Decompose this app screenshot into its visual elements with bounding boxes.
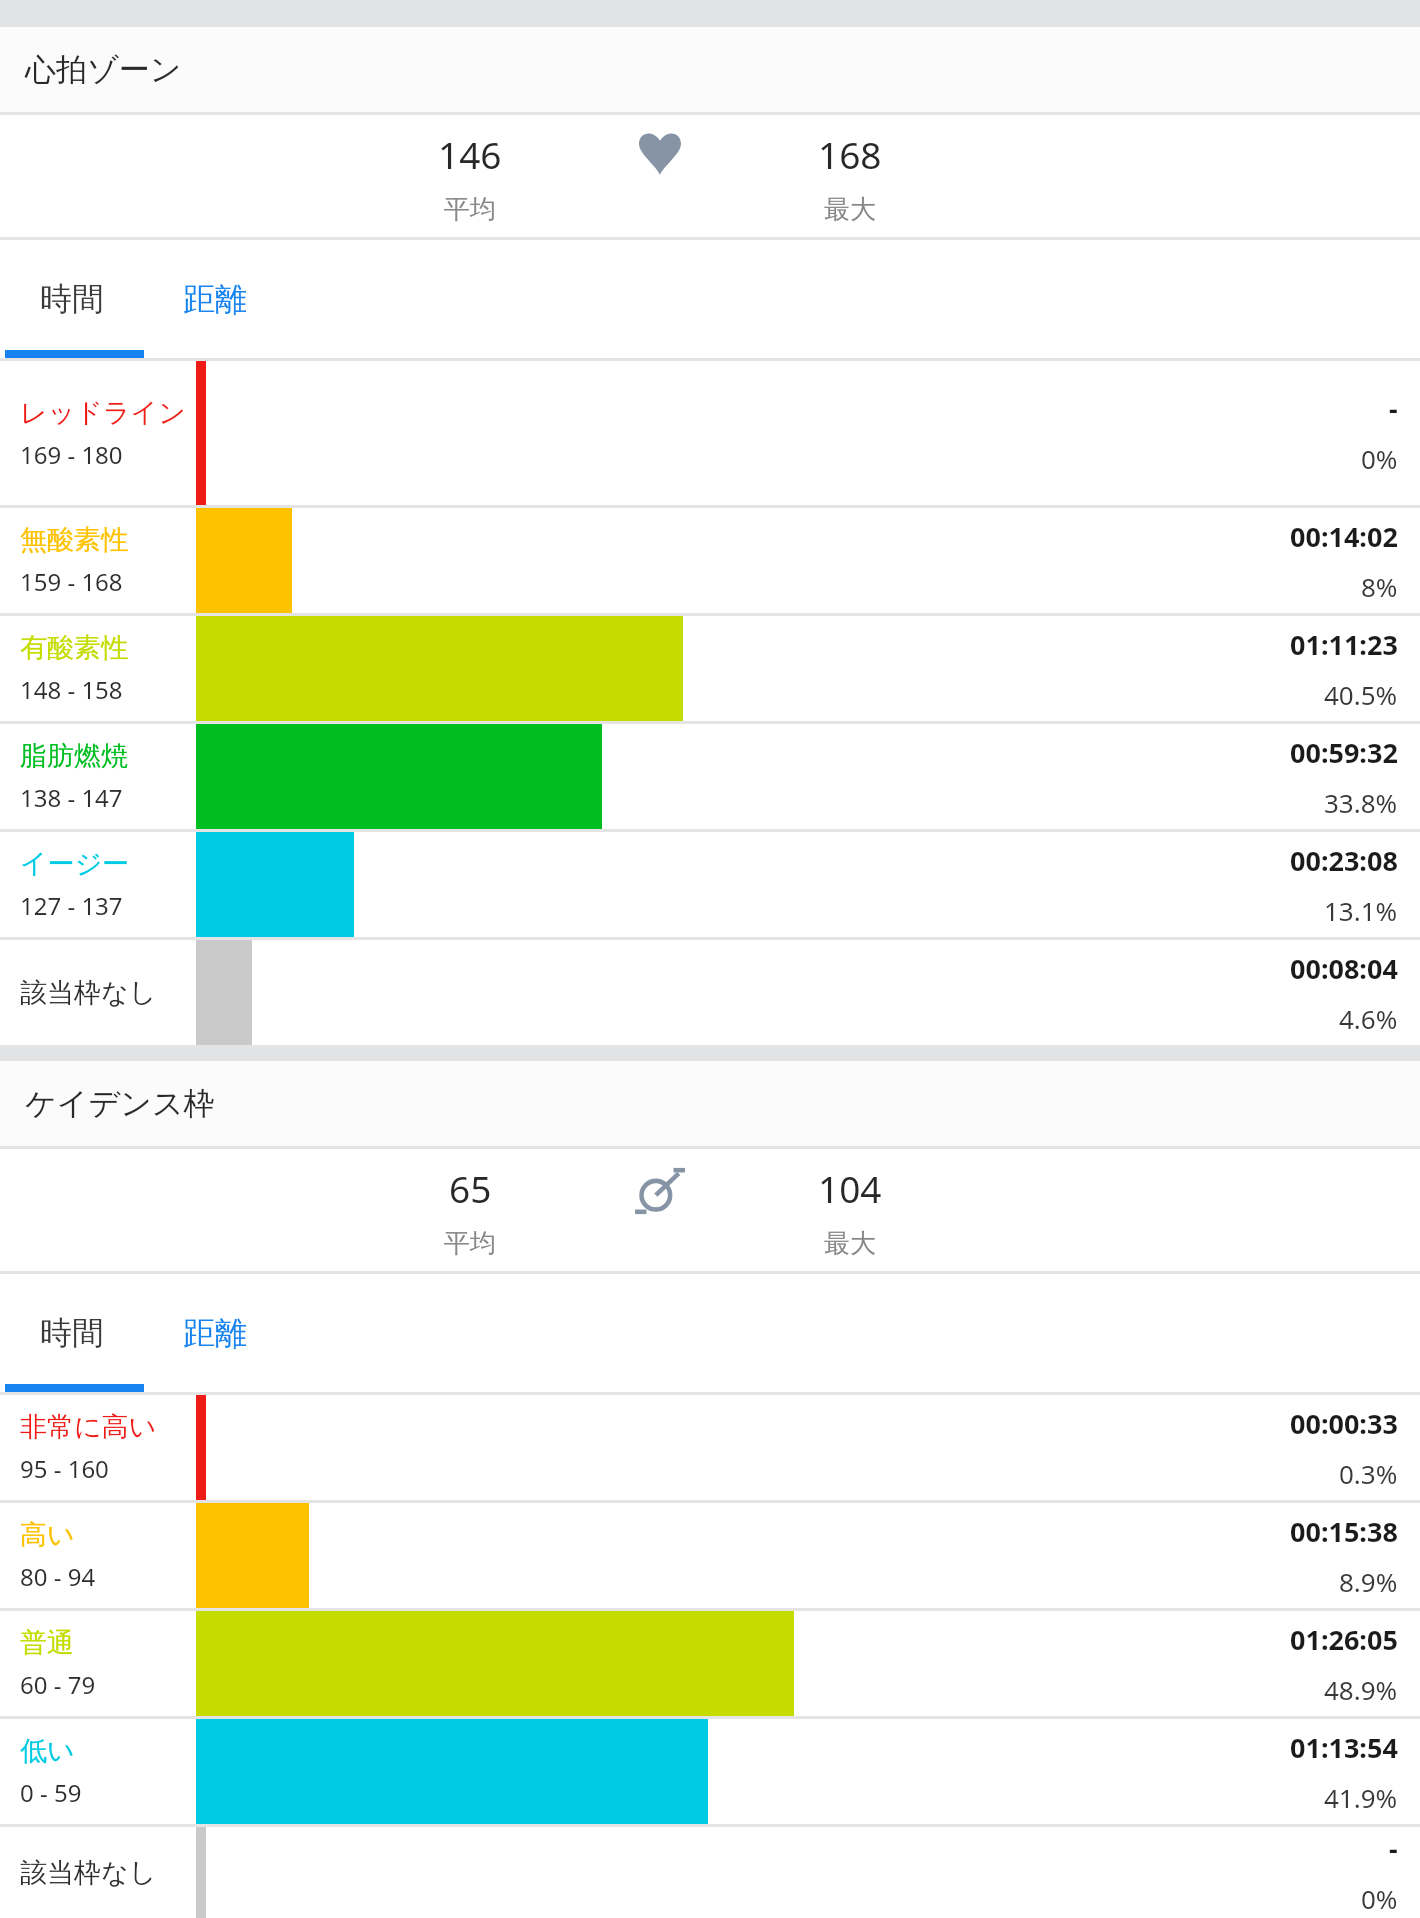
staticText: 01:13:54	[1290, 1729, 1398, 1766]
staticText: 最大	[824, 193, 876, 226]
staticText: 00:00:33	[1290, 1405, 1398, 1442]
staticText: 104	[818, 1163, 882, 1213]
staticText: 169 - 180	[20, 438, 123, 471]
staticText: -	[1389, 390, 1398, 427]
staticText: 168	[818, 129, 882, 179]
staticText: 8.9%	[1339, 1564, 1398, 1599]
other: Cadence	[634, 1165, 686, 1217]
staticText: 00:59:32	[1290, 734, 1398, 771]
staticText: 159 - 168	[20, 565, 123, 598]
staticText: 0%	[1361, 1881, 1398, 1916]
button[interactable]: 距離	[143, 240, 286, 358]
staticText: 平均	[444, 1227, 496, 1260]
staticText: レッドライン	[20, 396, 186, 430]
staticText: 00:23:08	[1290, 842, 1398, 879]
staticText: 33.8%	[1324, 785, 1398, 820]
button[interactable]: 時間	[0, 1274, 143, 1392]
staticText: ケイデンス枠	[25, 1084, 215, 1123]
staticText: 146	[438, 129, 502, 179]
button[interactable]: ケイデンス枠	[0, 1061, 1420, 1146]
staticText: 低い	[20, 1734, 75, 1768]
staticText: 148 - 158	[20, 673, 123, 706]
staticText: -	[1389, 1830, 1398, 1867]
staticText: イージー	[20, 847, 130, 881]
staticText: 65	[449, 1163, 492, 1213]
button[interactable]: 有酸素性	[0, 616, 1420, 724]
staticText: 01:11:23	[1290, 626, 1398, 663]
staticText: 48.9%	[1324, 1672, 1398, 1707]
button[interactable]: 低い	[0, 1719, 1420, 1827]
staticText: 00:14:02	[1290, 518, 1398, 555]
staticText: 無酸素性	[20, 523, 128, 557]
staticText: 8%	[1361, 569, 1398, 604]
button[interactable]: 非常に高い	[0, 1395, 1420, 1503]
staticText: 0%	[1361, 441, 1398, 476]
button[interactable]: 該当枠なし	[0, 1827, 1420, 1918]
button[interactable]: 無酸素性	[0, 508, 1420, 616]
button[interactable]: 距離	[143, 1274, 286, 1392]
staticText: 0 - 59	[20, 1776, 82, 1809]
staticText: 距離	[183, 1313, 247, 1353]
staticText: 0.3%	[1339, 1456, 1398, 1491]
staticText: 01:26:05	[1290, 1621, 1398, 1658]
staticText: 00:08:04	[1290, 950, 1398, 987]
button[interactable]: 普通	[0, 1611, 1420, 1719]
staticText: 有酸素性	[20, 631, 128, 665]
staticText: 40.5%	[1324, 677, 1398, 712]
staticText: 該当枠なし	[20, 1856, 157, 1890]
staticText: 時間	[40, 279, 104, 319]
staticText: 60 - 79	[20, 1668, 96, 1701]
staticText: 最大	[824, 1227, 876, 1260]
staticText: 時間	[40, 1313, 104, 1353]
staticText: 127 - 137	[20, 889, 123, 922]
staticText: 距離	[183, 279, 247, 319]
staticText: 41.9%	[1324, 1780, 1398, 1815]
staticText: 普通	[20, 1626, 74, 1660]
staticText: 心拍ゾーン	[25, 50, 182, 89]
button[interactable]: 高い	[0, 1503, 1420, 1611]
staticText: 該当枠なし	[20, 976, 157, 1010]
button[interactable]: レッドライン	[0, 361, 1420, 508]
staticText: 非常に高い	[20, 1410, 157, 1444]
staticText: 00:15:38	[1290, 1513, 1398, 1550]
button[interactable]: 心拍ゾーン	[0, 27, 1420, 112]
staticText: 4.6%	[1339, 1001, 1398, 1036]
staticText: 95 - 160	[20, 1452, 109, 1485]
staticText: 80 - 94	[20, 1560, 96, 1593]
button[interactable]: 脂肪燃焼	[0, 724, 1420, 832]
button[interactable]: イージー	[0, 832, 1420, 940]
other: Heart rate	[639, 131, 681, 175]
staticText: 13.1%	[1324, 893, 1398, 928]
staticText: 高い	[20, 1518, 75, 1552]
staticText: 138 - 147	[20, 781, 123, 814]
staticText: 脂肪燃焼	[20, 739, 128, 773]
button[interactable]: 該当枠なし	[0, 940, 1420, 1048]
button[interactable]: 時間	[0, 240, 143, 358]
staticText: 平均	[444, 193, 496, 226]
